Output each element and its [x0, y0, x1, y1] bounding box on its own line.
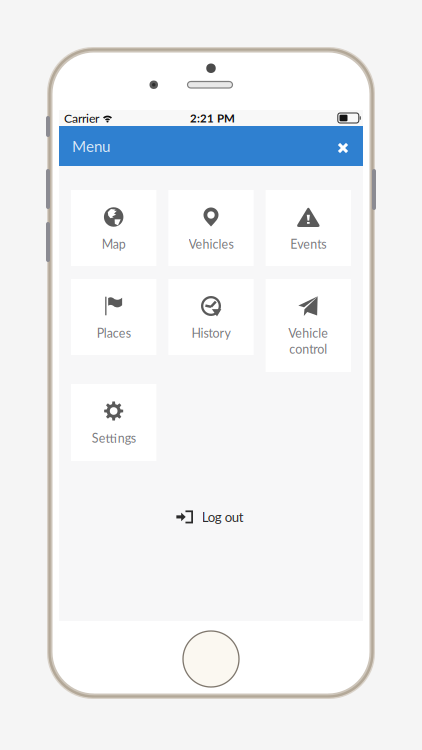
- button[interactable]: Events: [266, 190, 351, 266]
- staticText: Carrier: [64, 111, 99, 125]
- staticText: Map: [102, 237, 126, 251]
- button[interactable]: Places: [71, 279, 156, 355]
- button[interactable]: History: [168, 279, 254, 355]
- button[interactable]: Settings: [71, 384, 156, 461]
- button[interactable]: Map: [71, 190, 156, 266]
- staticText: Vehicles: [188, 237, 233, 251]
- staticText: Menu: [72, 137, 110, 155]
- staticText: Places: [97, 326, 131, 340]
- staticText: 2:21 PM: [190, 111, 235, 125]
- button[interactable]: Log out: [166, 500, 256, 534]
- button[interactable]: Vehicles: [168, 190, 254, 266]
- staticText: Log out: [202, 509, 244, 525]
- staticText: control: [289, 342, 327, 356]
- button[interactable]: Vehicle: [266, 279, 351, 372]
- staticText: Events: [290, 237, 326, 251]
- staticText: Vehicle: [288, 326, 328, 340]
- staticText: Settings: [92, 431, 136, 445]
- button[interactable]: Close: [329, 131, 357, 161]
- staticText: History: [191, 326, 230, 340]
